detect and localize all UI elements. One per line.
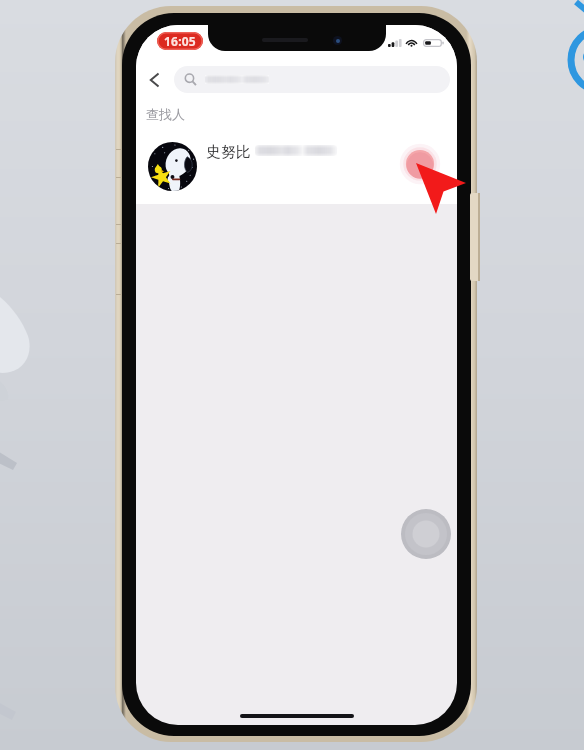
staticText: 查找人 — [146, 106, 185, 122]
staticText: 16:05 — [164, 33, 196, 49]
staticText: 史努比 — [206, 143, 251, 162]
button[interactable]: Add friend — [398, 142, 442, 186]
button[interactable]: AssistiveTouch — [401, 509, 451, 559]
button[interactable]: Recording time 16:05 — [157, 32, 203, 50]
button[interactable]: Back — [139, 65, 169, 95]
button[interactable]: 史努比 — [136, 128, 457, 204]
button[interactable]: Search — [174, 66, 450, 93]
